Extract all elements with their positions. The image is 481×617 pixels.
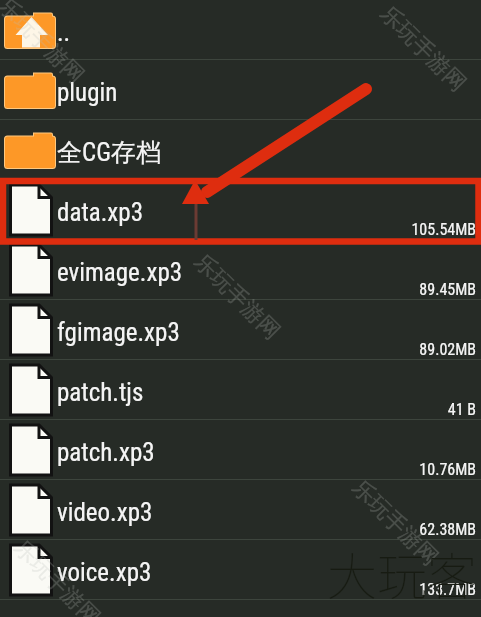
staticText: plugin	[57, 78, 118, 107]
button[interactable]: voice.xp3	[0, 540, 481, 600]
button[interactable]: ..	[0, 0, 481, 60]
staticText: patch.tjs	[57, 378, 144, 407]
button[interactable]: patch.tjs	[0, 360, 481, 420]
staticText: 10.76MB	[419, 460, 476, 479]
staticText: data.xp3	[57, 198, 143, 227]
button[interactable]: data.xp3	[0, 180, 481, 240]
staticText: 62.38MB	[419, 520, 476, 539]
staticText: 大玩客	[327, 537, 477, 609]
staticText: 乐玩手游网	[0, 0, 90, 90]
staticText: 89.45MB	[419, 280, 476, 299]
staticText: 乐玩手游网	[374, 0, 472, 98]
staticText: ..	[57, 18, 71, 47]
staticText: fgimage.xp3	[57, 318, 180, 347]
button[interactable]: video.xp3	[0, 480, 481, 540]
staticText: 41 B	[447, 400, 476, 419]
staticText: 乐玩手游网	[346, 474, 444, 572]
button[interactable]: evimage.xp3	[0, 240, 481, 300]
staticText: 133.7MB	[419, 580, 476, 599]
button[interactable]: 全CG存档	[0, 120, 481, 180]
staticText: 89.02MB	[419, 340, 476, 359]
staticText: 乐玩手游网	[8, 534, 106, 617]
staticText: patch.xp3	[57, 438, 155, 467]
button[interactable]: patch.xp3	[0, 420, 481, 480]
staticText: 全CG存档	[57, 137, 161, 168]
staticText: evimage.xp3	[57, 258, 183, 287]
staticText: video.xp3	[57, 498, 153, 527]
button[interactable]: fgimage.xp3	[0, 300, 481, 360]
staticText: 乐玩手游网	[188, 248, 286, 346]
staticText: 105.54MB	[411, 220, 476, 239]
button[interactable]: plugin	[0, 60, 481, 120]
staticText: voice.xp3	[57, 558, 152, 587]
